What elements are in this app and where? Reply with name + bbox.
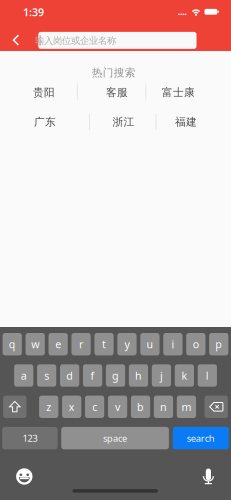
button[interactable]: Back — [0, 0, 231, 500]
staticText: d — [66, 368, 73, 383]
button[interactable]: w — [25, 333, 45, 355]
staticText: search — [187, 432, 215, 444]
button[interactable]: 输入岗位或企业名称 — [38, 32, 196, 49]
staticText: h — [135, 368, 142, 383]
button[interactable]: t — [94, 333, 114, 355]
button[interactable]: m — [177, 396, 196, 418]
button[interactable]: 广东 — [34, 115, 56, 128]
staticText: r — [79, 337, 83, 351]
button[interactable]: u — [140, 333, 159, 355]
button[interactable]: y — [117, 333, 136, 355]
staticText: q — [9, 337, 16, 351]
button[interactable]: j — [152, 364, 171, 387]
staticText: y — [124, 337, 129, 351]
button[interactable]: i — [163, 333, 182, 355]
staticText: x — [69, 400, 75, 414]
staticText: c — [92, 400, 97, 414]
button[interactable]: x — [62, 396, 81, 418]
staticText: m — [181, 400, 191, 414]
staticText: 输入岗位或企业名称 — [35, 35, 116, 46]
staticText: 福建 — [175, 115, 197, 128]
button[interactable]: z — [39, 396, 58, 418]
button[interactable]: c — [85, 396, 104, 418]
staticText: l — [206, 368, 209, 383]
staticText: a — [21, 368, 27, 383]
staticText: t — [102, 337, 106, 351]
button[interactable]: h — [129, 364, 148, 387]
staticText: b — [137, 400, 144, 414]
staticText: o — [193, 337, 199, 351]
button[interactable]: r — [71, 333, 91, 355]
staticText: s — [44, 368, 49, 383]
staticText: 富士康 — [162, 86, 195, 99]
staticText: 123 — [22, 432, 37, 444]
button[interactable]: 富士康 — [162, 86, 195, 99]
staticText: n — [160, 400, 167, 414]
button[interactable]: s — [37, 364, 56, 387]
button[interactable]: a — [14, 364, 33, 387]
staticText: v — [115, 400, 120, 414]
staticText: i — [171, 337, 174, 351]
button[interactable]: p — [209, 333, 228, 355]
staticText: 贵阳 — [33, 86, 55, 99]
staticText: p — [215, 337, 222, 351]
button[interactable]: e — [48, 333, 68, 355]
button[interactable]: 福建 — [175, 115, 197, 128]
staticText: 浙江 — [113, 115, 135, 128]
button[interactable]: Delete — [204, 396, 228, 418]
button[interactable]: Shift — [3, 396, 26, 418]
staticText: space — [103, 432, 127, 444]
button[interactable]: k — [175, 364, 194, 387]
button[interactable]: f — [83, 364, 102, 387]
staticText: u — [146, 337, 153, 351]
button[interactable]: v — [108, 396, 127, 418]
button[interactable]: Emoji — [16, 468, 32, 485]
button[interactable]: 123 — [2, 427, 58, 449]
button[interactable]: n — [154, 396, 173, 418]
button[interactable]: space — [61, 427, 169, 449]
button[interactable]: search — [173, 427, 229, 449]
staticText: 热门搜索 — [92, 66, 136, 79]
button[interactable]: 浙江 — [113, 115, 135, 128]
button[interactable]: 客服 — [106, 86, 128, 99]
button[interactable]: q — [3, 333, 22, 355]
staticText: g — [112, 368, 119, 383]
staticText: e — [55, 337, 61, 351]
button[interactable]: d — [60, 364, 79, 387]
button[interactable]: b — [131, 396, 150, 418]
staticText: f — [91, 368, 95, 383]
staticText: 1:39 — [23, 5, 44, 19]
button[interactable]: g — [106, 364, 125, 387]
button[interactable]: o — [186, 333, 205, 355]
button[interactable]: 贵阳 — [33, 86, 55, 99]
staticText: 客服 — [106, 86, 128, 99]
staticText: z — [46, 400, 51, 414]
staticText: j — [160, 368, 163, 383]
staticText: w — [31, 337, 39, 351]
button[interactable]: l — [198, 364, 217, 387]
button[interactable]: Dictate — [199, 464, 217, 486]
staticText: k — [181, 368, 187, 383]
staticText: 广东 — [34, 115, 56, 128]
